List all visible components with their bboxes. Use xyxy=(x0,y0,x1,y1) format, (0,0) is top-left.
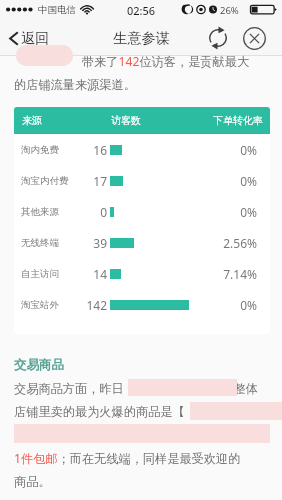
button[interactable]: Refresh xyxy=(205,25,231,51)
staticText: 淘宝内付费 xyxy=(21,175,69,187)
staticText: 访客数 xyxy=(111,114,141,127)
staticText: 02:56 xyxy=(127,3,156,18)
button[interactable]: 淘宝内付费 xyxy=(14,165,270,196)
staticText: 0% xyxy=(197,142,257,158)
button[interactable]: 自主访问 xyxy=(14,258,270,289)
staticText: 返回 xyxy=(21,29,50,47)
staticText: 39 xyxy=(66,235,107,251)
staticText: 淘内免费 xyxy=(21,144,59,156)
staticText: 下单转化率 xyxy=(213,114,263,127)
staticText: 国国国国国5带来了142位访客，是贡献最大 的店铺流量来源渠道。 xyxy=(14,53,270,93)
button[interactable]: 淘内免费 xyxy=(14,134,270,165)
staticText: 0% xyxy=(197,173,257,189)
staticText: 自主访问 xyxy=(21,268,59,280)
button[interactable]: Close xyxy=(241,25,267,51)
staticText: 142 xyxy=(66,297,107,313)
staticText: 17 xyxy=(66,173,107,189)
staticText: 0% xyxy=(197,204,257,220)
button[interactable]: 其他来源 xyxy=(14,196,270,227)
button[interactable]: 无线终端 xyxy=(14,227,270,258)
staticText: 0 xyxy=(66,204,107,220)
staticText: 14 xyxy=(66,266,107,282)
staticText: 淘宝站外 xyxy=(21,299,59,311)
staticText: 2.56% xyxy=(197,235,257,251)
staticText: 16 xyxy=(66,142,107,158)
staticText: 0% xyxy=(197,297,257,313)
button[interactable]: 返回 xyxy=(0,23,58,53)
button[interactable]: 淘宝站外 xyxy=(14,289,270,320)
staticText: 生意参谋 xyxy=(113,29,170,47)
staticText: 中国电信 xyxy=(38,4,76,16)
staticText: 交易商品方面，昨日国国国国国国国国国整体 店铺里卖的最为火爆的商品是【国国国国国… xyxy=(14,381,270,490)
staticText: 其他来源 xyxy=(21,206,59,218)
staticText: 26% xyxy=(220,4,239,17)
staticText: 无线终端 xyxy=(21,237,59,249)
staticText: 交易商品 xyxy=(14,357,64,373)
staticText: 来源 xyxy=(22,114,42,127)
staticText: 7.14% xyxy=(197,266,257,282)
